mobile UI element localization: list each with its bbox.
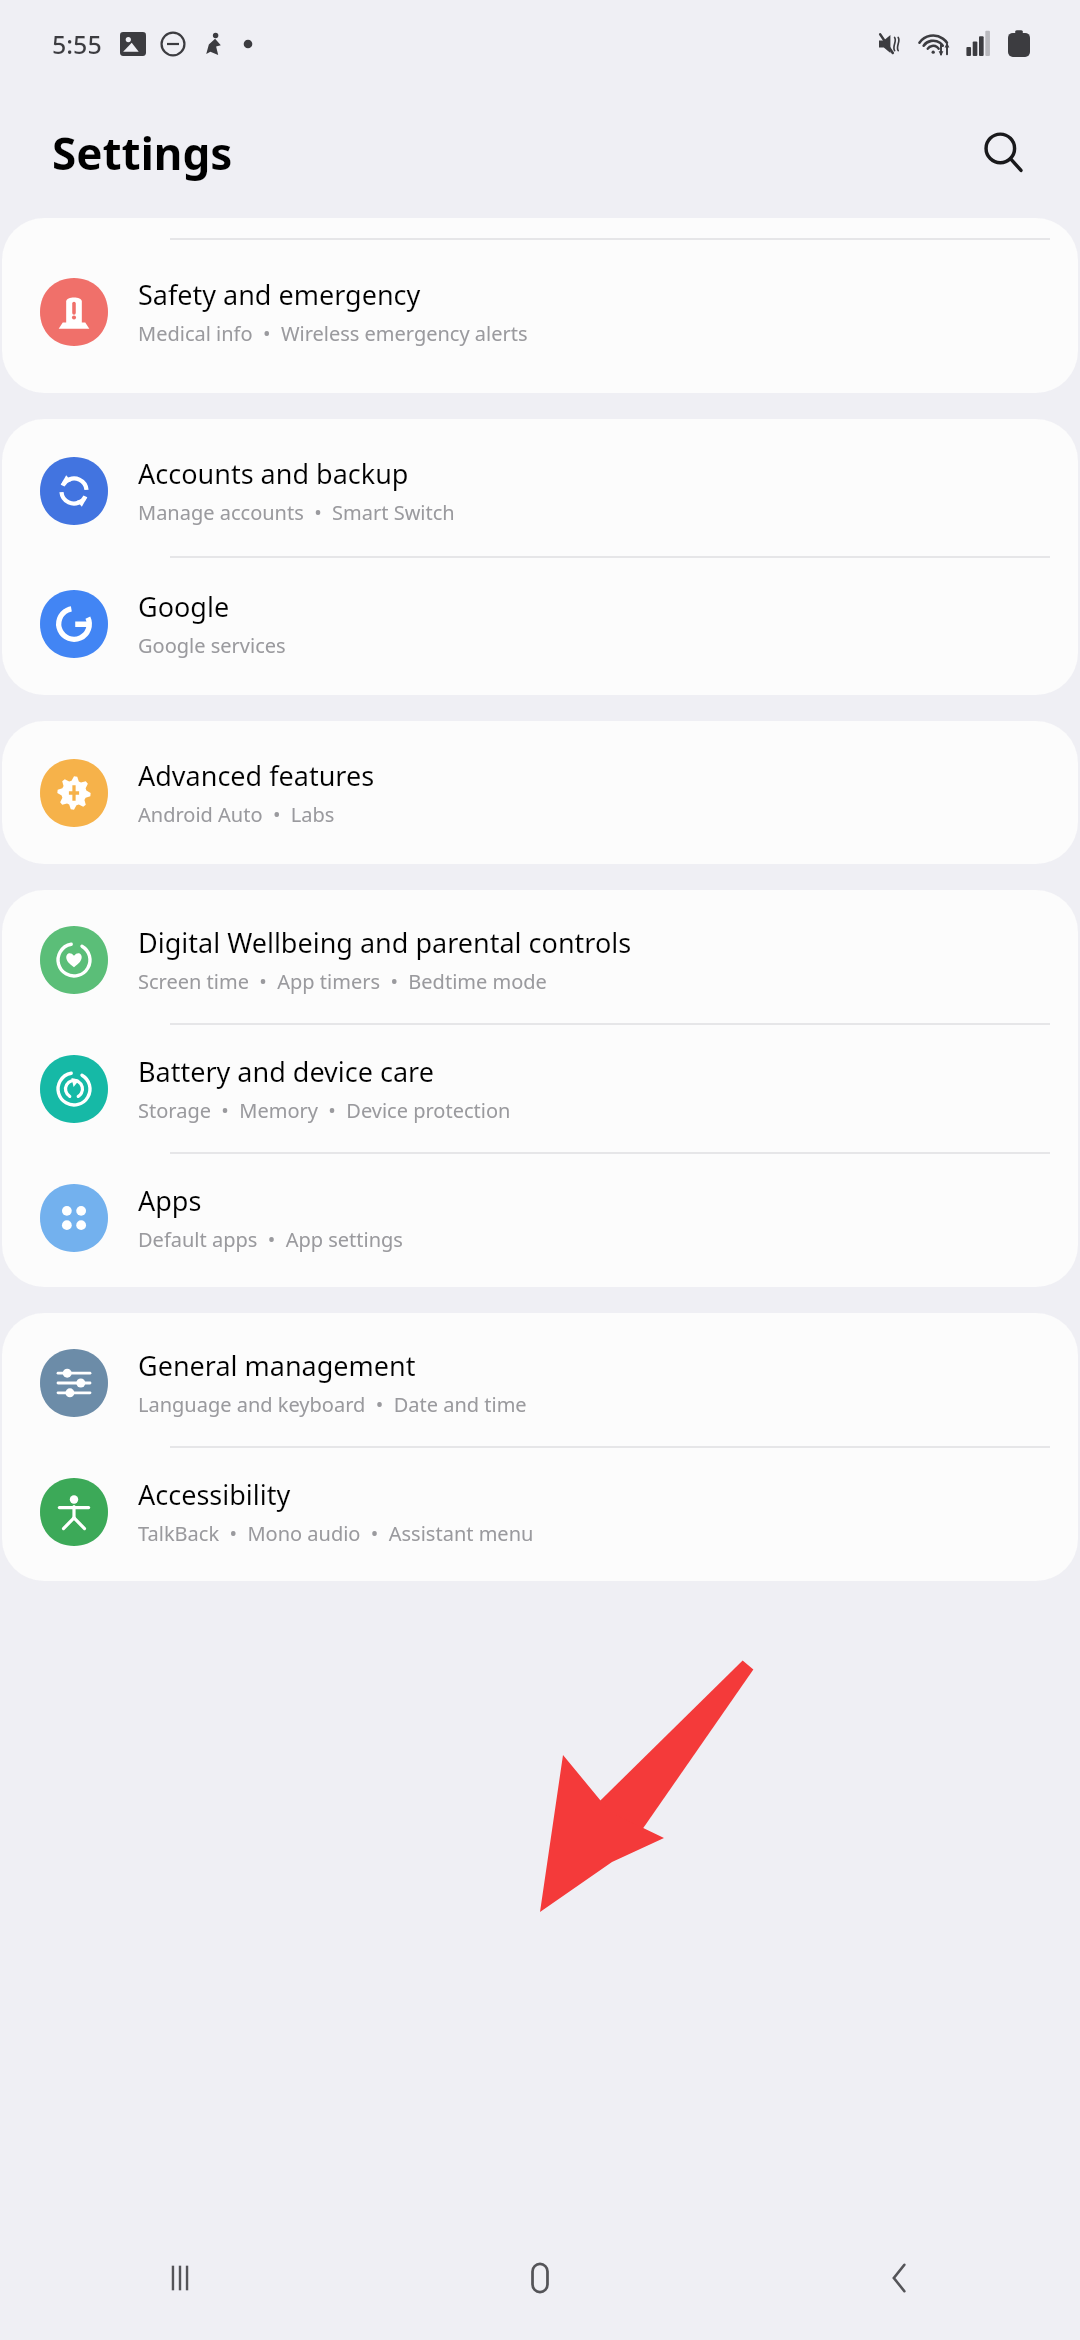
staticText: Safety and emergency xyxy=(138,276,421,313)
staticText: Google services xyxy=(138,632,286,659)
staticText: TalkBack • Mono audio • Assistant menu xyxy=(138,1520,534,1547)
staticText: General management xyxy=(138,1347,416,1384)
staticText: Apps xyxy=(138,1182,202,1219)
button[interactable]: Accessibility xyxy=(2,1448,1078,1581)
button[interactable]: Accounts and backup xyxy=(2,419,1078,556)
staticText: Default apps • App settings xyxy=(138,1226,403,1253)
staticText: Accessibility xyxy=(138,1476,291,1513)
staticText: Medical info • Wireless emergency alerts xyxy=(138,320,528,347)
button[interactable]: Back xyxy=(720,2215,1080,2340)
staticText: Screen time • App timers • Bedtime mode xyxy=(138,968,547,995)
button[interactable]: Battery and device care xyxy=(2,1025,1078,1152)
button[interactable]: Home xyxy=(360,2215,720,2340)
staticText: Storage • Memory • Device protection xyxy=(138,1097,511,1124)
staticText: Settings xyxy=(52,123,233,183)
staticText: Language and keyboard • Date and time xyxy=(138,1391,527,1418)
button[interactable]: Search xyxy=(968,117,1040,189)
button[interactable]: Google xyxy=(2,558,1078,695)
button[interactable]: General management xyxy=(2,1313,1078,1446)
staticText: 5:55 xyxy=(52,27,102,61)
button[interactable]: Safety and emergency xyxy=(2,240,1078,393)
button[interactable]: Apps xyxy=(2,1154,1078,1287)
button[interactable]: Digital Wellbeing and parental controls xyxy=(2,890,1078,1023)
staticText: Battery and device care xyxy=(138,1053,434,1090)
staticText: Google xyxy=(138,588,230,625)
staticText: Advanced features xyxy=(138,757,375,794)
staticText: Android Auto • Labs xyxy=(138,801,335,828)
button[interactable]: Advanced features xyxy=(2,721,1078,864)
staticText: Digital Wellbeing and parental controls xyxy=(138,924,632,961)
button[interactable]: Recents xyxy=(0,2215,360,2340)
staticText: Accounts and backup xyxy=(138,455,409,492)
staticText: Manage accounts • Smart Switch xyxy=(138,499,455,526)
